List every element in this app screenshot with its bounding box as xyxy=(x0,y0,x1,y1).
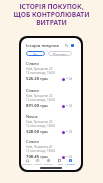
staticText: 12 листопада, 18:04 xyxy=(26,71,55,75)
staticText: Novus xyxy=(26,114,38,119)
staticText: Оплата xyxy=(44,162,53,165)
staticText: 12 листопада, 18:04 xyxy=(26,124,55,128)
staticText: Історія покупок xyxy=(26,43,60,49)
staticText: Київ, Хрещатик 22 xyxy=(26,67,53,71)
staticText: ІСТОРІЯ ПОКУПОК, ЩОБ КОНТРОЛЮВАТИ ВИТРАТ… xyxy=(0,2,103,27)
staticText: 891.00 грн xyxy=(26,103,48,109)
staticText: Сільпо xyxy=(26,61,39,66)
staticText: Київ, Хрещатик 22 xyxy=(26,94,53,98)
button[interactable]: Сільпо xyxy=(21,88,81,111)
staticText: 12 листопада, 18:04 xyxy=(26,149,55,153)
staticText: •• 24 xyxy=(66,77,73,81)
button[interactable]: Покупки xyxy=(48,51,72,56)
button[interactable]: Novus xyxy=(21,114,81,137)
button[interactable]: Оплата xyxy=(43,159,54,167)
staticText: 526.20 грн xyxy=(26,76,48,82)
button[interactable]: Сільпо xyxy=(21,139,81,162)
staticText: Сільпо xyxy=(26,139,39,144)
staticText: 12 листопада, 18:04 xyxy=(26,98,55,102)
button[interactable]: Головна xyxy=(22,159,32,167)
staticText: Київ, Хрещатик 22 xyxy=(26,120,53,124)
staticText: Профіль xyxy=(65,162,76,165)
staticText: •• 24 xyxy=(66,104,73,108)
staticText: Київ, Перемоги 41 xyxy=(26,145,53,149)
staticText: Усі xyxy=(33,52,38,56)
button[interactable]: Calendar xyxy=(70,43,75,48)
staticText: Карти xyxy=(34,162,42,165)
staticText: Сільпо xyxy=(26,88,39,93)
button[interactable]: Карти xyxy=(32,159,43,167)
staticText: Головна xyxy=(22,162,32,165)
button[interactable]: Профіль xyxy=(65,159,76,167)
staticText: Покупки xyxy=(53,52,67,56)
staticText: •• 24 xyxy=(66,130,73,134)
staticText: 708.45 грн xyxy=(26,154,48,160)
button[interactable]: Сільпо xyxy=(21,61,81,84)
button[interactable]: Усі xyxy=(26,51,45,56)
button[interactable]: Search xyxy=(64,43,69,48)
staticText: •• 24 xyxy=(66,155,73,159)
staticText: Чеки xyxy=(57,162,63,165)
staticText: 328.00 грн xyxy=(26,129,48,135)
button[interactable]: Чеки xyxy=(54,159,65,167)
